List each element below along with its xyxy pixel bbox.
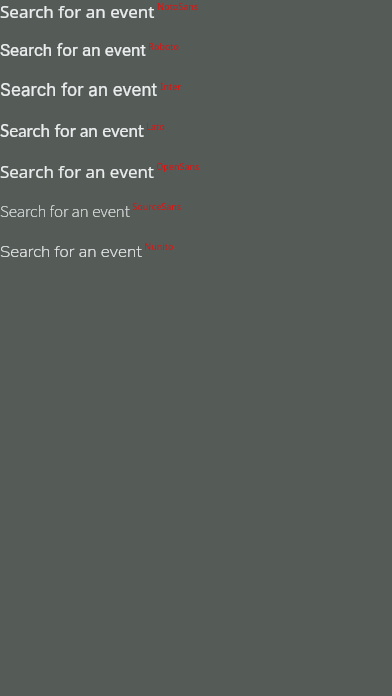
staticText: Search for an event <box>0 200 130 224</box>
staticText: Lato <box>144 120 165 132</box>
staticText: NotoSans <box>155 0 199 12</box>
staticText: Search for an event <box>0 80 158 101</box>
staticText: Search for an event <box>0 160 154 183</box>
staticText: Search for an event <box>0 120 144 140</box>
staticText: Search for an event <box>0 40 146 60</box>
staticText: Inter <box>158 80 181 92</box>
staticText: SourceSans <box>130 200 182 212</box>
staticText: Nunito <box>142 240 174 252</box>
staticText: Roboto <box>146 40 180 52</box>
staticText: Search for an event <box>0 240 142 263</box>
staticText: Search for an event <box>0 0 155 23</box>
staticText: OpenSans <box>154 160 200 172</box>
